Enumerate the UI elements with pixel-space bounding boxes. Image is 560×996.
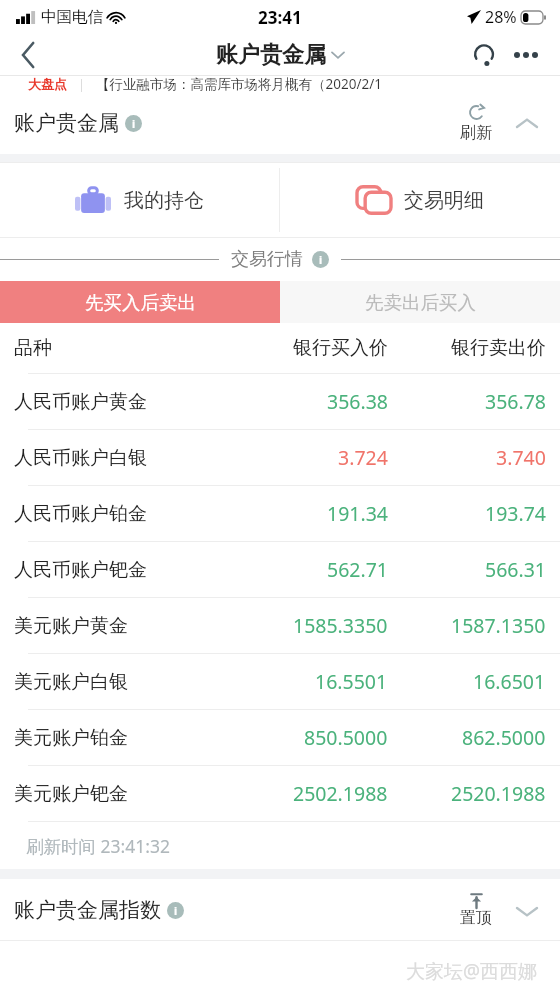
button[interactable]: 账户贵金属指数	[14, 897, 184, 923]
staticText: 1587.1350	[451, 612, 546, 639]
button[interactable]: 人民币账户白银	[0, 429, 560, 485]
staticText: 品种	[14, 336, 52, 360]
staticText: 大盘点	[28, 76, 67, 92]
staticText: 美元账户黄金	[14, 614, 128, 638]
button[interactable]: 置顶	[456, 893, 496, 928]
staticText: 美元账户钯金	[14, 782, 128, 806]
staticText: 先买入后卖出	[85, 291, 196, 314]
staticText: 1585.3350	[293, 612, 388, 639]
staticText: 账户贵金属	[216, 41, 326, 69]
staticText: 566.31	[485, 556, 546, 583]
button[interactable]: Expand	[510, 894, 544, 928]
button[interactable]: 美元账户白银	[0, 653, 560, 709]
button[interactable]: Collapse	[510, 106, 544, 140]
staticText: 28%	[485, 6, 517, 28]
staticText: i	[319, 253, 323, 267]
staticText: 191.34	[327, 500, 388, 527]
staticText: 我的持仓	[124, 188, 204, 213]
staticText: 3.740	[496, 444, 546, 471]
staticText: 2520.1988	[451, 780, 546, 807]
button[interactable]: 账户贵金属	[216, 41, 344, 69]
button[interactable]: Back	[0, 34, 56, 75]
button[interactable]: 账户贵金属	[14, 110, 142, 136]
button[interactable]: 刷新	[456, 103, 496, 143]
staticText: 大家坛@西西娜	[406, 958, 538, 984]
staticText: 人民币账户白银	[14, 446, 147, 470]
button[interactable]: More options	[506, 35, 546, 75]
staticText: 【行业融市场：高需厍市场将月概有（2020/2/1	[96, 75, 382, 92]
button[interactable]: 美元账户黄金	[0, 597, 560, 653]
button[interactable]: 先卖出后买入	[280, 281, 560, 323]
staticText: 先卖出后买入	[365, 291, 476, 314]
staticText: 862.5000	[462, 724, 546, 751]
staticText: 刷新时间 23:41:32	[26, 834, 170, 858]
staticText: 人民币账户钯金	[14, 558, 147, 582]
staticText: 16.6501	[473, 668, 546, 695]
button[interactable]: 人民币账户钯金	[0, 541, 560, 597]
button[interactable]: 我的持仓	[0, 162, 279, 238]
staticText: 刷新	[460, 123, 492, 143]
staticText: 356.78	[485, 388, 546, 415]
button[interactable]: 人民币账户黄金	[0, 373, 560, 429]
staticText: 16.5501	[315, 668, 388, 695]
button[interactable]: 交易明细	[280, 162, 560, 238]
staticText: 银行卖出价	[451, 336, 546, 360]
staticText: 2502.1988	[293, 780, 388, 807]
button[interactable]: 美元账户钯金	[0, 765, 560, 821]
staticText: i	[132, 117, 136, 131]
staticText: 人民币账户铂金	[14, 502, 147, 526]
staticText: 356.38	[327, 388, 388, 415]
staticText: 美元账户白银	[14, 670, 128, 694]
staticText: 美元账户铂金	[14, 726, 128, 750]
staticText: 交易明细	[404, 188, 484, 213]
staticText: 562.71	[327, 556, 388, 583]
staticText: 账户贵金属指数	[14, 897, 161, 923]
staticText: i	[174, 904, 178, 918]
button[interactable]: 人民币账户铂金	[0, 485, 560, 541]
staticText: 23:41	[258, 6, 302, 29]
staticText: 人民币账户黄金	[14, 390, 147, 414]
staticText: 850.5000	[304, 724, 388, 751]
staticText: 置顶	[460, 908, 492, 928]
staticText: 中国电信	[41, 7, 103, 27]
button[interactable]: 美元账户铂金	[0, 709, 560, 765]
staticText: 账户贵金属	[14, 110, 119, 136]
button[interactable]: 先买入后卖出	[0, 281, 280, 323]
staticText: 银行买入价	[293, 336, 388, 360]
button[interactable]: Customer service	[464, 35, 504, 75]
staticText: 193.74	[485, 500, 546, 527]
staticText: 交易行情	[231, 248, 303, 271]
staticText: 3.724	[338, 444, 388, 471]
